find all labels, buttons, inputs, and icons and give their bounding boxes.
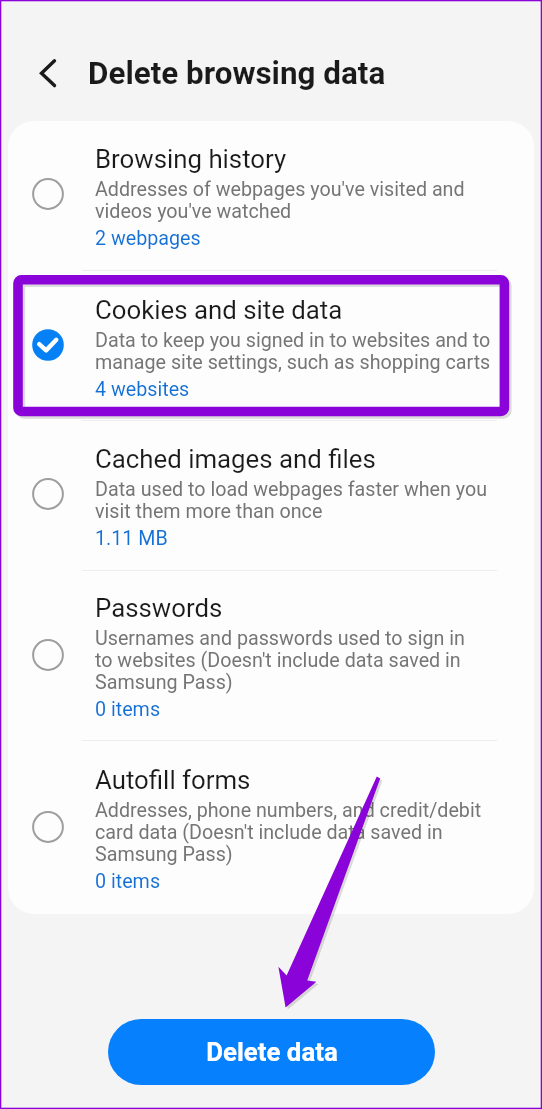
button[interactable]: Passwords xyxy=(0,569,542,741)
staticText: Addresses of webpages you've visited and… xyxy=(95,178,465,223)
staticText: Cached images and files xyxy=(95,444,376,474)
staticText: 0 items xyxy=(95,870,161,893)
staticText: Cookies and site data xyxy=(95,295,343,325)
staticText: Autofill forms xyxy=(95,765,251,795)
staticText: Usernames and passwords used to sign in … xyxy=(95,627,465,694)
staticText: Passwords xyxy=(95,593,223,623)
staticText: Data used to load webpages faster when y… xyxy=(95,478,488,523)
staticText: 2 webpages xyxy=(95,227,201,250)
staticText: Addresses, phone numbers, and credit/deb… xyxy=(95,799,482,866)
button[interactable]: Cached images and files xyxy=(0,420,542,570)
button[interactable]: Autofill forms xyxy=(0,741,542,913)
staticText: Delete browsing data xyxy=(88,55,386,92)
button[interactable]: Delete data xyxy=(108,1019,435,1085)
button[interactable]: Back xyxy=(24,49,72,97)
staticText: Data to keep you signed in to websites a… xyxy=(95,329,491,374)
button[interactable]: Browsing history xyxy=(0,120,542,270)
staticText: 4 websites xyxy=(95,378,190,401)
staticText: 0 items xyxy=(95,698,161,721)
staticText: Delete data xyxy=(206,1037,338,1067)
staticText: Browsing history xyxy=(95,144,287,174)
staticText: 1.11 MB xyxy=(95,527,168,550)
button[interactable]: Cookies and site data xyxy=(0,271,542,421)
